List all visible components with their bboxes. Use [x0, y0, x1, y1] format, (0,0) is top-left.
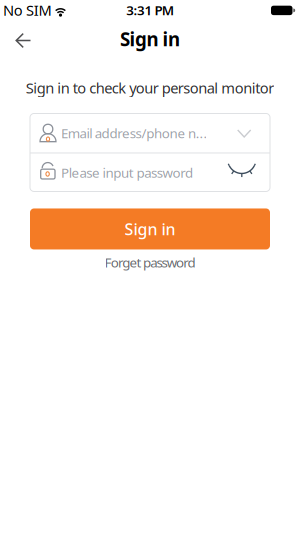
staticText: Forget password: [105, 253, 195, 271]
staticText: Sign in to check your personal monitor: [26, 78, 274, 97]
staticText: Sign in: [124, 218, 175, 240]
button[interactable]: Forget password: [105, 249, 195, 271]
button[interactable]: Show password: [227, 162, 270, 182]
staticText: 3:31 PM: [126, 1, 174, 19]
staticText: Email address/phone n...: [61, 124, 207, 142]
button[interactable]: Email address/phone number: [30, 113, 270, 152]
staticText: Sign in: [120, 27, 180, 51]
staticText: Please input password: [61, 164, 193, 181]
button[interactable]: Back: [0, 21, 32, 56]
button[interactable]: Please input password: [30, 153, 270, 191]
staticText: No SIM: [3, 0, 51, 20]
button[interactable]: Sign in: [30, 208, 270, 249]
